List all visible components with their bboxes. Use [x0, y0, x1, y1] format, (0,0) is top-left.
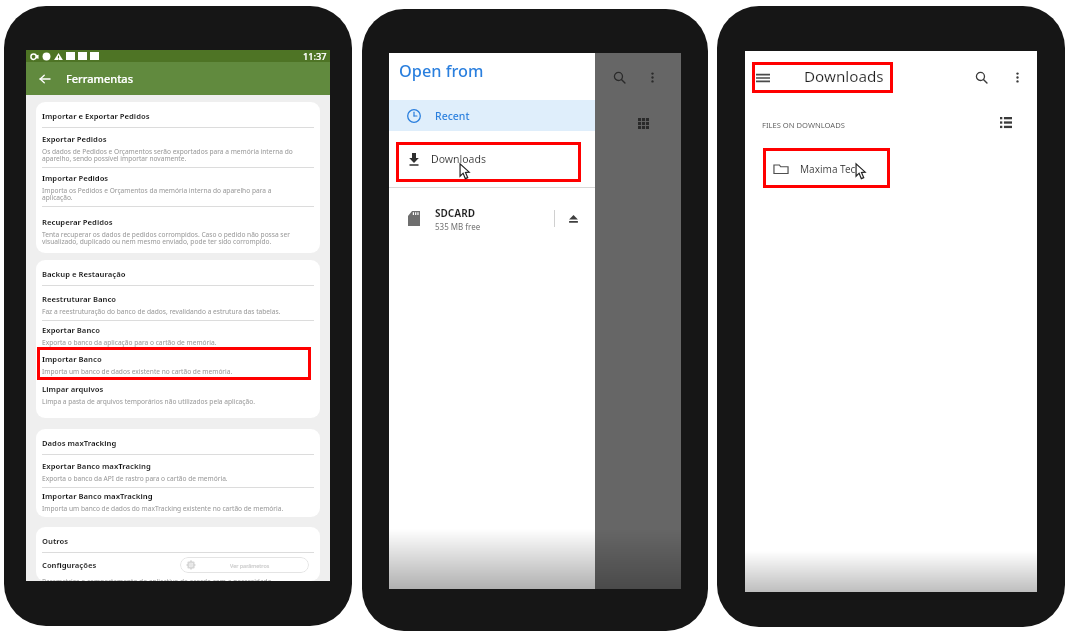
- button[interactable]: Recuperar Pedidos: [42, 217, 314, 246]
- button[interactable]: Exportar Banco maxTracking: [42, 461, 314, 483]
- staticText: Os dados de Pedidos e Orçamentos serão e…: [42, 147, 314, 163]
- staticText: Importar e Exportar Pedidos: [42, 111, 150, 121]
- button[interactable]: More options: [639, 64, 666, 91]
- staticText: Limpa a pasta de arquivos temporários nã…: [42, 397, 255, 406]
- button[interactable]: SDCARD: [389, 188, 595, 249]
- staticText: Downloads: [804, 66, 884, 87]
- staticText: 535 MB free: [435, 221, 481, 232]
- button[interactable]: Search: [606, 64, 633, 91]
- staticText: Exportar Pedidos: [42, 134, 107, 144]
- button[interactable]: Exportar Banco: [42, 325, 314, 347]
- button[interactable]: Reestruturar Banco: [42, 294, 314, 316]
- button[interactable]: Grid view: [634, 114, 652, 132]
- button[interactable]: Limpar arquivos: [42, 384, 314, 406]
- staticText: Dados maxTracking: [42, 438, 117, 448]
- staticText: Importa os Pedidos e Orçamentos da memór…: [42, 186, 272, 202]
- staticText: Importar Banco: [42, 354, 102, 364]
- staticText: Importa um banco de dados existente no c…: [42, 367, 233, 376]
- button[interactable]: Importar Banco maxTracking: [42, 491, 314, 513]
- staticText: Importar Pedidos: [42, 173, 109, 183]
- staticText: Open from: [399, 60, 484, 82]
- button[interactable]: Search: [968, 64, 995, 91]
- button[interactable]: Back: [30, 64, 59, 93]
- staticText: 11:37: [303, 50, 327, 62]
- staticText: Reestruturar Banco: [42, 294, 117, 304]
- button[interactable]: Recent: [389, 100, 595, 131]
- button[interactable]: Exportar Pedidos: [42, 134, 314, 163]
- staticText: Backup e Restauração: [42, 269, 126, 279]
- staticText: Importa um banco de dados do maxTracking…: [42, 504, 284, 513]
- staticText: Recent: [435, 109, 470, 123]
- button[interactable]: Downloads: [389, 131, 595, 187]
- staticText: Exportar Banco maxTracking: [42, 461, 151, 471]
- staticText: Ver parâmetros: [230, 562, 270, 569]
- staticText: Configurações: [42, 560, 97, 570]
- button[interactable]: Importar Banco: [42, 354, 314, 376]
- staticText: Recuperar Pedidos: [42, 217, 113, 227]
- staticText: Parametriza o comportamento do aplicativ…: [42, 577, 274, 581]
- staticText: Importar Banco maxTracking: [42, 491, 153, 501]
- staticText: Faz a reestruturação do banco de dados, …: [42, 307, 281, 316]
- staticText: Maxima Tec: [800, 162, 856, 176]
- button[interactable]: Maxima Tec: [745, 143, 1037, 194]
- staticText: Exporta o banco da API de rastro para o …: [42, 474, 228, 483]
- staticText: Exporta o banco da aplicação para o cart…: [42, 338, 217, 347]
- staticText: SDCARD: [435, 206, 476, 220]
- button[interactable]: List view: [994, 111, 1018, 135]
- staticText: Downloads: [431, 152, 486, 166]
- button[interactable]: Ver parâmetros: [180, 557, 309, 573]
- staticText: Outros: [42, 536, 69, 546]
- staticText: Tenta recuperar os dados de pedidos corr…: [42, 230, 314, 246]
- staticText: Ferramentas: [66, 71, 133, 86]
- button[interactable]: Importar Pedidos: [42, 173, 314, 202]
- staticText: Exportar Banco: [42, 325, 100, 335]
- staticText: Limpar arquivos: [42, 384, 104, 394]
- button[interactable]: Menu: [749, 64, 776, 91]
- button[interactable]: More options: [1004, 64, 1031, 91]
- staticText: FILES ON DOWNLOADS: [762, 120, 845, 130]
